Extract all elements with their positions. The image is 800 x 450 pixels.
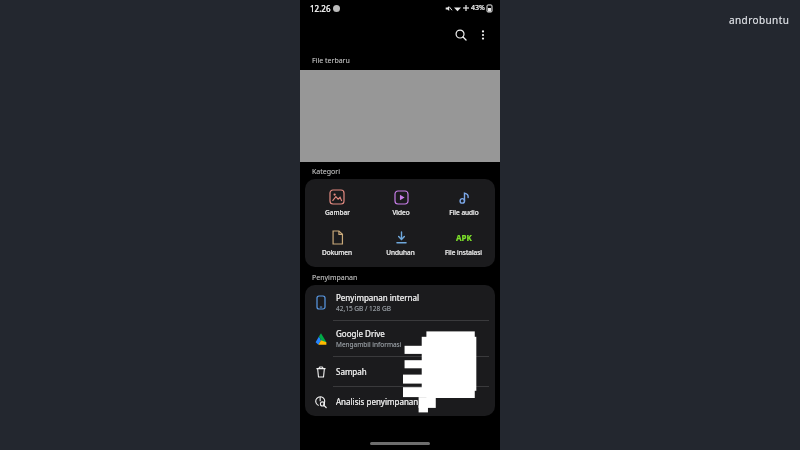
button[interactable]: Unduhan — [369, 225, 432, 261]
staticText: 42,15 GB / 128 GB — [336, 304, 391, 313]
staticText: androbuntu — [729, 13, 790, 27]
staticText: Video — [392, 208, 410, 217]
staticText: Google Drive — [336, 328, 385, 339]
button[interactable]: More options — [472, 24, 494, 46]
staticText: APK — [456, 232, 472, 243]
button[interactable]: Dokumen — [305, 225, 369, 261]
staticText: 43% — [471, 3, 485, 13]
staticText: Sampah — [336, 366, 367, 377]
staticText: Penyimpanan — [312, 273, 358, 283]
button[interactable]: APK — [432, 225, 495, 261]
button[interactable]: Google Drive — [305, 321, 495, 356]
staticText: 12.26 — [310, 3, 331, 14]
staticText: Kategori — [312, 167, 340, 177]
staticText: Dokumen — [322, 248, 352, 257]
staticText: Unduhan — [386, 248, 415, 257]
staticText: File audio — [449, 208, 479, 217]
staticText: Gambar — [325, 208, 350, 217]
staticText: File terbaru — [312, 56, 350, 66]
button[interactable]: Gambar — [305, 185, 369, 221]
staticText: Analisis penyimpanan — [336, 396, 419, 407]
button[interactable]: File audio — [432, 185, 495, 221]
button[interactable]: Sampah — [305, 357, 495, 386]
button[interactable]: Search — [450, 24, 472, 46]
button[interactable]: Video — [369, 185, 432, 221]
staticText: Penyimpanan internal — [336, 292, 419, 303]
button[interactable]: Penyimpanan internal — [305, 285, 495, 320]
staticText: Mengambil informasi — [336, 340, 402, 349]
staticText: File instalasi — [445, 248, 482, 257]
button[interactable]: Analisis penyimpanan — [305, 387, 495, 416]
